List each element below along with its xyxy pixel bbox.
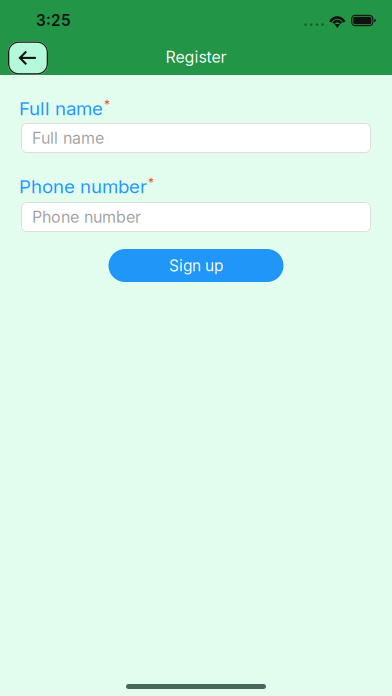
staticText: * [148,175,154,190]
button[interactable]: Back [8,41,48,74]
staticText: 3:25 [36,11,71,30]
staticText: Full name [19,97,103,120]
staticText: Sign up [169,256,223,275]
button[interactable]: Sign up [108,249,283,282]
staticText: Phone number [32,207,141,227]
staticText: * [104,97,110,112]
staticText: Register [165,47,226,67]
staticText: Full name [32,128,104,148]
staticText: Phone number [19,175,147,198]
